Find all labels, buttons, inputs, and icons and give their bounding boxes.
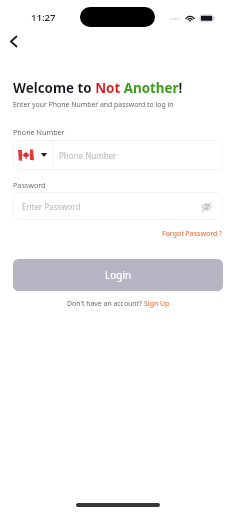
staticText: Login (105, 268, 132, 282)
staticText: Welcome to Not Another! (13, 79, 183, 97)
staticText: Don't have an account? (67, 299, 144, 308)
button[interactable]: Enter Password (13, 192, 223, 220)
staticText: Phone Number (59, 150, 117, 161)
staticText: Enter Password (22, 201, 200, 212)
button[interactable]: Login (13, 259, 223, 291)
staticText: 11:27 (31, 11, 56, 24)
staticText: Enter your Phone Number and password to … (13, 100, 174, 109)
button[interactable]: Phone Number (13, 140, 223, 170)
button[interactable]: Back (4, 32, 22, 50)
staticText: Phone Number (13, 127, 65, 137)
staticText: Password (13, 180, 46, 190)
button[interactable]: Show password (199, 200, 213, 214)
button[interactable]: Forgot Password ? (162, 229, 223, 238)
button[interactable]: Sign Up (144, 299, 170, 308)
